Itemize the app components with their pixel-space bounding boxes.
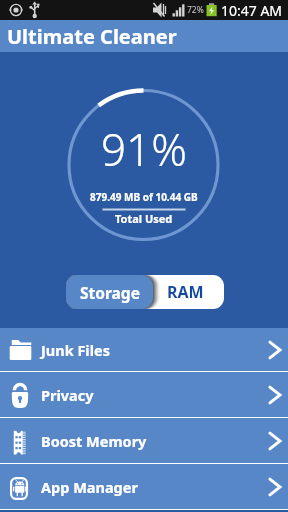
staticText: Privacy: [41, 385, 94, 405]
staticText: RAM: [167, 281, 204, 303]
staticText: 72%: [187, 4, 204, 16]
button[interactable]: Boost Memory: [0, 418, 288, 463]
button[interactable]: Ultimate Cleaner: [0, 20, 288, 52]
staticText: Ultimate Cleaner: [7, 23, 177, 50]
staticText: Junk Files: [41, 340, 110, 360]
staticText: 91%: [101, 119, 187, 179]
staticText: Storage: [80, 282, 140, 303]
staticText: App Manager: [41, 477, 138, 497]
button[interactable]: Storage: [66, 275, 153, 309]
button[interactable]: Junk Files: [0, 328, 288, 371]
button[interactable]: RAM: [153, 275, 224, 309]
button[interactable]: Privacy: [0, 372, 288, 417]
staticText: 10:47 AM: [221, 1, 283, 20]
button[interactable]: App Manager: [0, 464, 288, 509]
staticText: 879.49 MB of 10.44 GB: [90, 190, 198, 204]
staticText: Boost Memory: [41, 431, 147, 451]
staticText: Total Used: [115, 211, 173, 226]
